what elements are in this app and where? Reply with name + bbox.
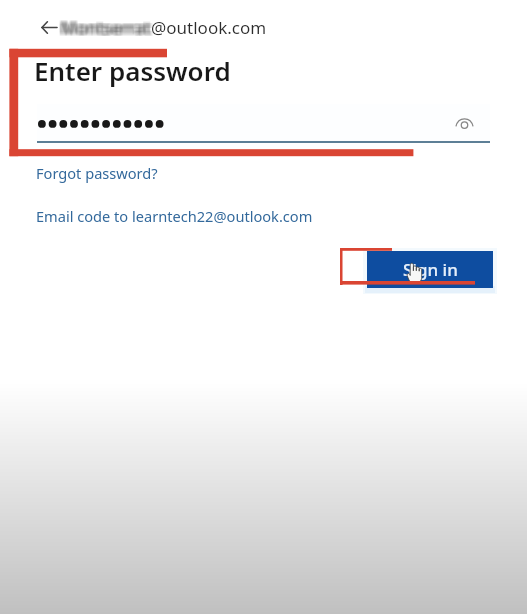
staticText: Montserrat xyxy=(63,15,153,38)
staticText: Montserrat xyxy=(60,18,150,41)
staticText: Montserrat xyxy=(58,18,148,41)
button[interactable]: Email code to learntech22@outlook.com xyxy=(36,206,313,226)
staticText: Montserrat xyxy=(64,16,154,39)
button[interactable]: Forgot password? xyxy=(36,163,158,183)
staticText: Montserrat xyxy=(59,16,149,39)
staticText: Montserrat xyxy=(61,16,151,39)
button[interactable]: Sign in xyxy=(367,251,493,288)
staticText: Sign in xyxy=(403,258,458,281)
staticText: Montserrat xyxy=(62,17,152,40)
staticText: Montserrat xyxy=(61,18,151,41)
staticText: Montserrat xyxy=(64,18,154,41)
staticText: Montserrat xyxy=(61,17,151,40)
staticText: Montserrat xyxy=(63,14,153,37)
staticText: Montserrat xyxy=(62,14,152,37)
staticText: Montserrat xyxy=(63,18,153,41)
button[interactable]: Back xyxy=(35,14,62,41)
staticText: Montserrat xyxy=(59,17,149,40)
staticText: Montserrat xyxy=(60,15,150,38)
staticText: Montserrat xyxy=(58,15,148,38)
staticText: Montserrat xyxy=(60,14,150,37)
staticText: Montserrat xyxy=(58,16,148,39)
staticText: @outlook.com xyxy=(151,16,267,39)
staticText: Montserrat xyxy=(64,15,154,38)
staticText: Montserrat xyxy=(64,17,154,40)
staticText: Montserrat xyxy=(58,17,148,40)
staticText: Montserrat xyxy=(61,15,151,38)
staticText: Montserrat xyxy=(63,17,153,40)
staticText: Montserrat xyxy=(62,18,152,41)
staticText: Montserrat xyxy=(59,14,149,37)
staticText: Montserrat xyxy=(61,14,151,37)
staticText: Montserrat xyxy=(60,16,150,39)
staticText: Montserrat xyxy=(59,15,149,38)
staticText: Montserrat xyxy=(64,14,154,37)
staticText: Montserrat xyxy=(62,16,152,39)
staticText: Montserrat xyxy=(60,17,150,40)
staticText: Montserrat xyxy=(59,18,149,41)
staticText: Montserrat xyxy=(63,16,153,39)
staticText: Montserrat xyxy=(62,15,152,38)
staticText: Enter password xyxy=(34,53,231,88)
button[interactable]: Show password xyxy=(450,108,478,136)
staticText: Montserrat xyxy=(58,14,148,37)
